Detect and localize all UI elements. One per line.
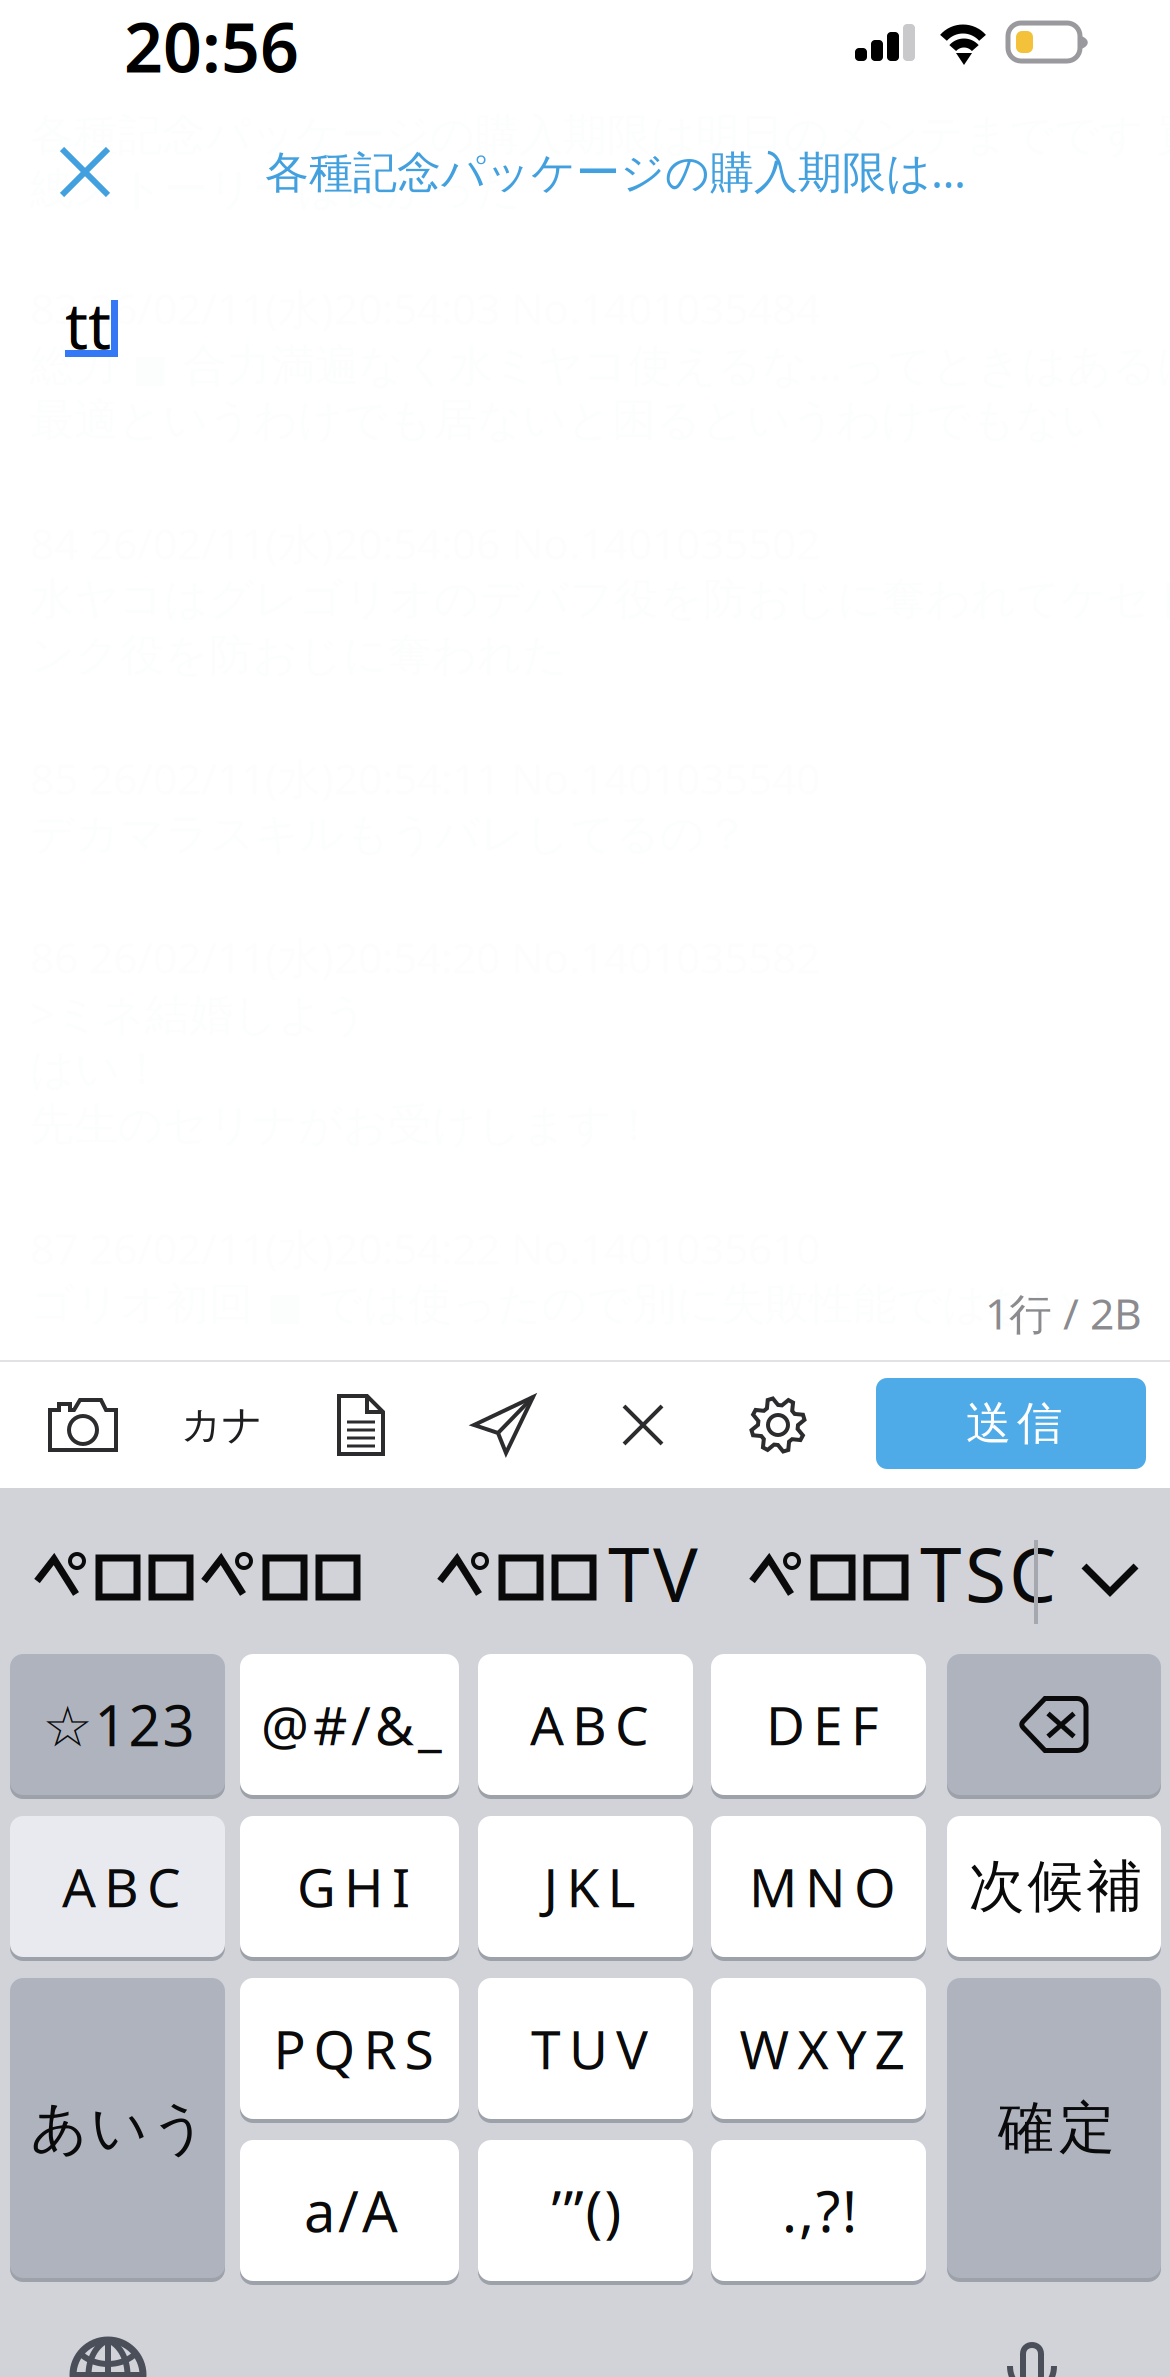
staticText: .,?! (782, 2173, 857, 2248)
staticText: @#/&_ (261, 1689, 442, 1760)
button[interactable]: 送信 (876, 1378, 1146, 1469)
button[interactable]: Templates (301, 1362, 421, 1488)
button[interactable]: DEF (711, 1654, 926, 1799)
staticText: 確定 (998, 2094, 1115, 2162)
staticText: ’”() (551, 2173, 621, 2248)
button[interactable]: ABC (10, 1816, 225, 1961)
staticText: TSC (920, 1523, 1056, 1623)
staticText: 次候補 (968, 1852, 1142, 1921)
button[interactable]: あいう (10, 1978, 225, 2282)
staticText: GHI (297, 1851, 410, 1922)
button[interactable]: More candidates (1062, 1548, 1158, 1610)
staticText: ☆123 (42, 1687, 194, 1762)
staticText: ABC (530, 1689, 649, 1760)
staticText: MNO (749, 1851, 896, 1922)
staticText: tt (65, 282, 111, 367)
staticText: ABC (62, 1851, 181, 1922)
button[interactable]: @#/&_ (240, 1654, 459, 1799)
button[interactable]: ’”() (478, 2140, 693, 2285)
button[interactable]: a/A (240, 2140, 459, 2285)
staticText: DEF (766, 1689, 879, 1760)
button[interactable]: Delete (947, 1654, 1161, 1799)
button[interactable]: Dictation (1000, 2332, 1100, 2377)
button[interactable]: Settings (718, 1362, 838, 1488)
staticText: 各種記念パッケージの購入期限は明日のメンテまでです 買い忘れー (30, 108, 1170, 162)
staticText: PQRS (273, 2013, 433, 2084)
button[interactable]: Katakana (162, 1362, 282, 1488)
staticText: 総力 ◼ 合力満遍なく水ミヤコ使えるな…ってときはあるけど (30, 335, 1170, 393)
staticText: JKL (543, 1851, 635, 1922)
button[interactable]: Clear text (583, 1362, 703, 1488)
staticText: 送信 (966, 1396, 1062, 1451)
staticText: 各種記念パッケージの購入期限は… (265, 142, 966, 200)
staticText: ご都合じゃねえぞ当会下 (30, 1456, 520, 1510)
staticText: 88 26/02/11(水)20:54:28 No.1401035612 (30, 1399, 820, 1455)
button[interactable]: ABC (478, 1654, 693, 1799)
button[interactable]: PQRS (240, 1978, 459, 2123)
staticText: TV (608, 1523, 698, 1623)
button[interactable]: MNO (711, 1816, 926, 1961)
staticText: 83 26/02/11(水)20:54:03 No.1401035484 (30, 280, 820, 336)
button[interactable]: Candidate 2 (437, 1548, 687, 1606)
button[interactable]: Candidate 1 (34, 1548, 364, 1606)
staticText: 20:56 (124, 1, 299, 91)
button[interactable]: TUV (478, 1978, 693, 2123)
staticText: 1行 / 2B (985, 1285, 1142, 1341)
button[interactable]: 次候補 (947, 1816, 1161, 1961)
button[interactable]: ☆123 (10, 1654, 225, 1799)
staticText: 絏ストーリーは良かった (30, 162, 521, 216)
button[interactable]: .,?! (711, 2140, 926, 2285)
staticText: TUV (531, 2013, 648, 2084)
staticText: ゴリオ初回 ◼ では使ったので別に失敗性能ではない (30, 1277, 1077, 1331)
staticText: カナ (181, 1400, 263, 1449)
button[interactable]: Quote (444, 1362, 564, 1488)
staticText: あいう (30, 2094, 207, 2162)
button[interactable]: Attach photo (23, 1362, 143, 1488)
button[interactable]: JKL (478, 1816, 693, 1961)
button[interactable]: Candidate 3 (749, 1548, 1039, 1606)
button[interactable]: GHI (240, 1816, 459, 1961)
button[interactable]: 確定 (947, 1978, 1161, 2282)
button[interactable]: Next keyboard (68, 2337, 188, 2377)
staticText: a/A (304, 2173, 398, 2248)
button[interactable]: Close (30, 122, 140, 222)
button[interactable]: WXYZ (711, 1978, 926, 2123)
staticText: WXYZ (739, 2013, 905, 2084)
